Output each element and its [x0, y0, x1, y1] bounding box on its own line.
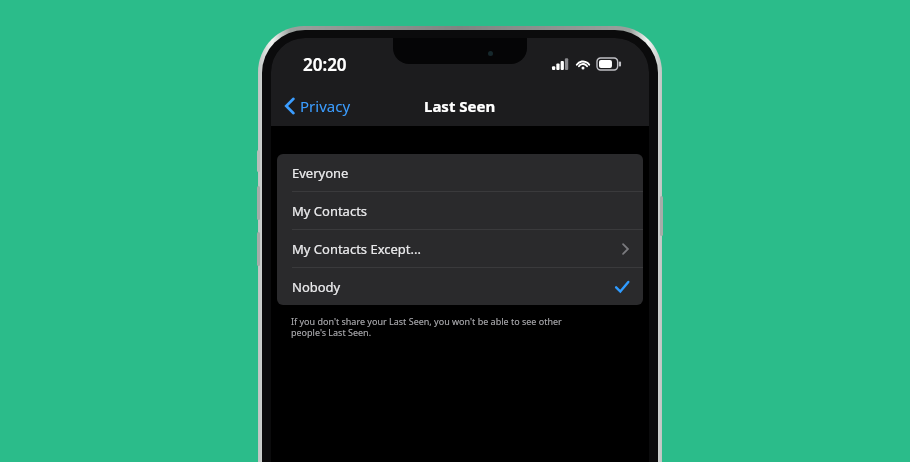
staticText: Last Seen: [424, 96, 496, 116]
other: Selected: [615, 280, 629, 294]
staticText: Privacy: [300, 96, 351, 116]
staticText: If you don't share your Last Seen, you w…: [291, 315, 588, 339]
other: Open: [622, 243, 629, 255]
button[interactable]: Nobody: [277, 268, 643, 305]
staticText: Everyone: [292, 164, 349, 182]
button[interactable]: Everyone: [277, 154, 643, 192]
staticText: My Contacts Except...: [292, 240, 421, 258]
button[interactable]: Privacy: [271, 92, 361, 120]
button[interactable]: My Contacts: [277, 192, 643, 230]
staticText: 20:20: [303, 53, 347, 76]
staticText: Nobody: [292, 278, 341, 296]
staticText: My Contacts: [292, 202, 368, 220]
button[interactable]: My Contacts Except...: [277, 230, 643, 268]
